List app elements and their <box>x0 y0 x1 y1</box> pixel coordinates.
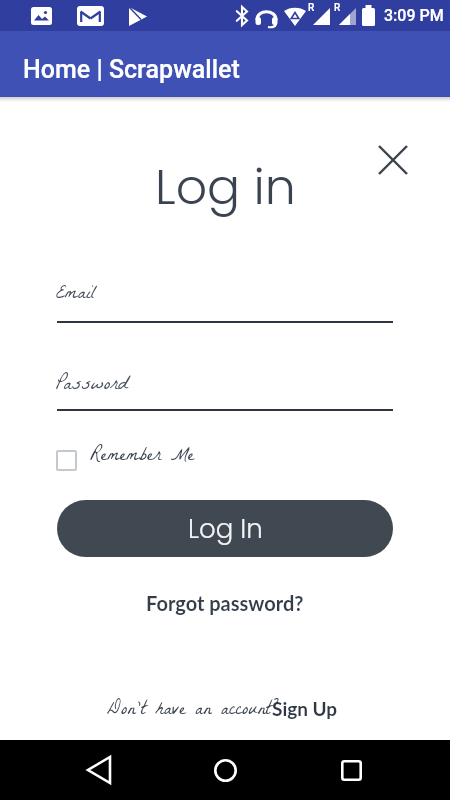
staticText: 3:09 PM <box>384 6 444 25</box>
button[interactable] <box>369 136 417 184</box>
staticText: Remember Me <box>90 440 195 475</box>
staticText: Don't have an account? <box>107 694 280 729</box>
staticText: Log in <box>155 153 296 222</box>
staticText: Password <box>56 367 129 404</box>
staticText: Home | Scrapwallet <box>23 55 240 84</box>
button[interactable] <box>75 746 123 794</box>
button[interactable] <box>327 746 375 794</box>
button[interactable]: Log In <box>57 500 393 557</box>
staticText: Log In <box>188 511 263 547</box>
staticText: R <box>308 2 315 14</box>
button[interactable] <box>201 746 249 794</box>
staticText: Email <box>56 276 96 313</box>
staticText: R <box>334 2 341 14</box>
button[interactable]: Sign Up <box>272 697 338 720</box>
button[interactable]: Remember Me <box>56 440 195 475</box>
button[interactable]: Forgot password? <box>146 591 304 615</box>
